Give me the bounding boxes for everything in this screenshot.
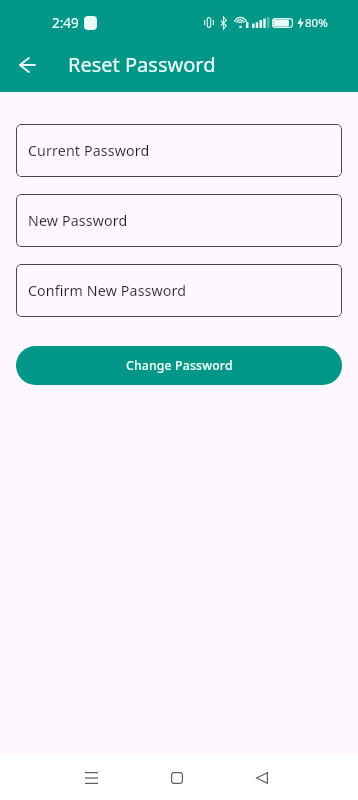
staticText: Reset Password xyxy=(68,51,216,78)
button[interactable]: Change Password xyxy=(16,346,342,385)
staticText: Change Password xyxy=(126,357,233,374)
staticText: 80% xyxy=(305,15,328,31)
staticText: Current Password xyxy=(28,141,150,160)
button[interactable]: Confirm New Password xyxy=(16,264,342,317)
button[interactable]: Back xyxy=(244,760,280,796)
staticText: Confirm New Password xyxy=(28,281,187,300)
button[interactable]: Back xyxy=(11,48,44,81)
button[interactable]: Recent apps xyxy=(73,760,109,796)
staticText: 2:49 xyxy=(52,14,79,32)
staticText: New Password xyxy=(28,211,128,230)
button[interactable]: Current Password xyxy=(16,124,342,177)
button[interactable]: New Password xyxy=(16,194,342,247)
button[interactable]: Home xyxy=(159,760,195,796)
